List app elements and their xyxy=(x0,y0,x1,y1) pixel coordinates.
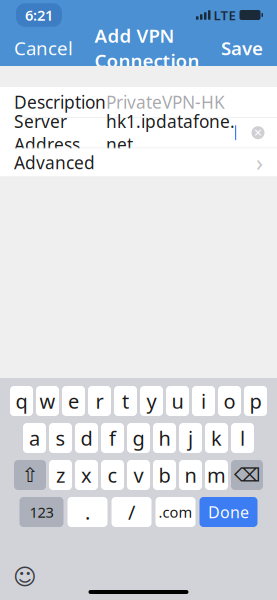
button[interactable]: p xyxy=(244,386,267,416)
staticText: LTE xyxy=(213,6,235,24)
staticText: Server Address xyxy=(14,110,80,156)
button[interactable]: Server Address xyxy=(0,118,277,148)
staticText: ⇧ xyxy=(21,464,38,486)
staticText: / xyxy=(128,499,135,525)
button[interactable]: h xyxy=(153,423,176,453)
staticText: Done xyxy=(208,501,249,523)
staticText: hk1.ipdatafone.net xyxy=(106,110,235,156)
button[interactable]: q xyxy=(10,386,33,416)
staticText: o xyxy=(223,388,235,414)
staticText: ⌫ xyxy=(234,464,260,486)
button[interactable]: c xyxy=(101,460,124,490)
staticText: n xyxy=(184,462,196,488)
button[interactable]: n xyxy=(179,460,202,490)
button[interactable]: b xyxy=(153,460,176,490)
button[interactable]: f xyxy=(101,423,124,453)
staticText: . xyxy=(85,499,90,525)
button[interactable]: o xyxy=(218,386,241,416)
staticText: e xyxy=(68,388,79,414)
staticText: a xyxy=(29,425,40,451)
staticText: Cancel xyxy=(14,36,73,60)
button[interactable]: Shift xyxy=(14,460,46,490)
staticText: .com xyxy=(158,502,192,522)
staticText: j xyxy=(188,425,193,451)
button[interactable]: t xyxy=(114,386,137,416)
button[interactable]: d xyxy=(75,423,98,453)
button[interactable]: Emoji keyboard xyxy=(10,564,40,590)
staticText: c xyxy=(107,462,117,488)
staticText: d xyxy=(80,425,92,451)
button[interactable]: Advanced xyxy=(0,148,277,176)
staticText: ✕ xyxy=(253,127,262,139)
staticText: Add VPN Connection xyxy=(94,23,199,73)
button[interactable]: s xyxy=(49,423,72,453)
staticText: t xyxy=(122,388,129,414)
staticText: Advanced xyxy=(14,151,95,174)
staticText: k xyxy=(211,425,222,451)
staticText: l xyxy=(240,425,245,451)
button[interactable]: w xyxy=(36,386,59,416)
button[interactable]: Delete xyxy=(231,460,263,490)
button[interactable]: Description xyxy=(0,87,277,117)
button[interactable]: a xyxy=(23,423,46,453)
staticText: g xyxy=(132,425,144,451)
staticText: y xyxy=(146,388,156,414)
staticText: s xyxy=(55,425,65,451)
button[interactable]: u xyxy=(166,386,189,416)
staticText: x xyxy=(81,462,92,488)
button[interactable]: y xyxy=(140,386,163,416)
button[interactable]: l xyxy=(231,423,254,453)
staticText: w xyxy=(39,388,55,414)
button[interactable]: Done xyxy=(199,497,257,527)
staticText: h xyxy=(158,425,170,451)
button[interactable]: . xyxy=(67,497,107,527)
button[interactable]: r xyxy=(88,386,111,416)
button[interactable]: j xyxy=(179,423,202,453)
staticText: f xyxy=(109,425,116,451)
button[interactable]: g xyxy=(127,423,150,453)
staticText: 123 xyxy=(29,502,53,522)
button[interactable]: i xyxy=(192,386,215,416)
staticText: z xyxy=(56,462,65,488)
staticText: m xyxy=(207,462,226,488)
button[interactable]: e xyxy=(62,386,85,416)
button[interactable]: x xyxy=(75,460,98,490)
button[interactable]: Cancel xyxy=(2,30,85,66)
staticText: › xyxy=(256,147,263,177)
staticText: PrivateVPN-HK xyxy=(106,90,225,113)
staticText: ☺ xyxy=(13,564,37,590)
button[interactable]: k xyxy=(205,423,228,453)
button[interactable]: / xyxy=(111,497,151,527)
staticText: r xyxy=(95,388,103,414)
staticText: p xyxy=(249,388,261,414)
button[interactable]: .com xyxy=(155,497,195,527)
staticText: Save xyxy=(221,36,263,60)
staticText: Description xyxy=(14,90,106,113)
button[interactable]: 123 xyxy=(19,497,63,527)
staticText: 6:21 xyxy=(25,5,53,25)
staticText: i xyxy=(201,388,206,414)
staticText: q xyxy=(15,388,27,414)
button[interactable]: m xyxy=(205,460,228,490)
button[interactable]: v xyxy=(127,460,150,490)
button[interactable]: z xyxy=(49,460,72,490)
staticText: v xyxy=(133,462,143,488)
button[interactable]: Save xyxy=(209,30,275,66)
button[interactable]: Clear text xyxy=(245,120,271,146)
staticText: b xyxy=(158,462,170,488)
staticText: u xyxy=(171,388,183,414)
